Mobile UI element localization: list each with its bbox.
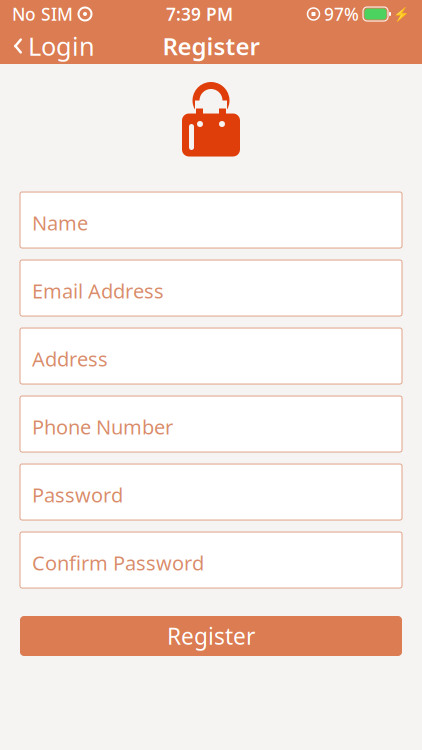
- staticText: ⚡: [393, 6, 410, 22]
- button[interactable]: Login: [0, 23, 107, 69]
- staticText: Login: [28, 29, 95, 63]
- button[interactable]: Email Address: [20, 260, 402, 316]
- button[interactable]: Register: [20, 616, 402, 656]
- staticText: Email Address: [32, 277, 164, 304]
- staticText: Register: [167, 621, 255, 651]
- staticText: Phone Number: [32, 413, 173, 440]
- staticText: No SIM: [12, 2, 73, 25]
- staticText: 7:39 PM: [166, 2, 233, 25]
- staticText: Address: [32, 345, 108, 372]
- staticText: Password: [32, 481, 123, 508]
- button[interactable]: Confirm Password: [20, 532, 402, 588]
- button[interactable]: Name: [20, 192, 402, 248]
- button[interactable]: Password: [20, 464, 402, 520]
- button[interactable]: Phone Number: [20, 396, 402, 452]
- staticText: Register: [162, 30, 259, 62]
- staticText: Confirm Password: [32, 549, 204, 576]
- staticText: 97%: [324, 2, 359, 25]
- staticText: Name: [32, 209, 88, 236]
- button[interactable]: Address: [20, 328, 402, 384]
